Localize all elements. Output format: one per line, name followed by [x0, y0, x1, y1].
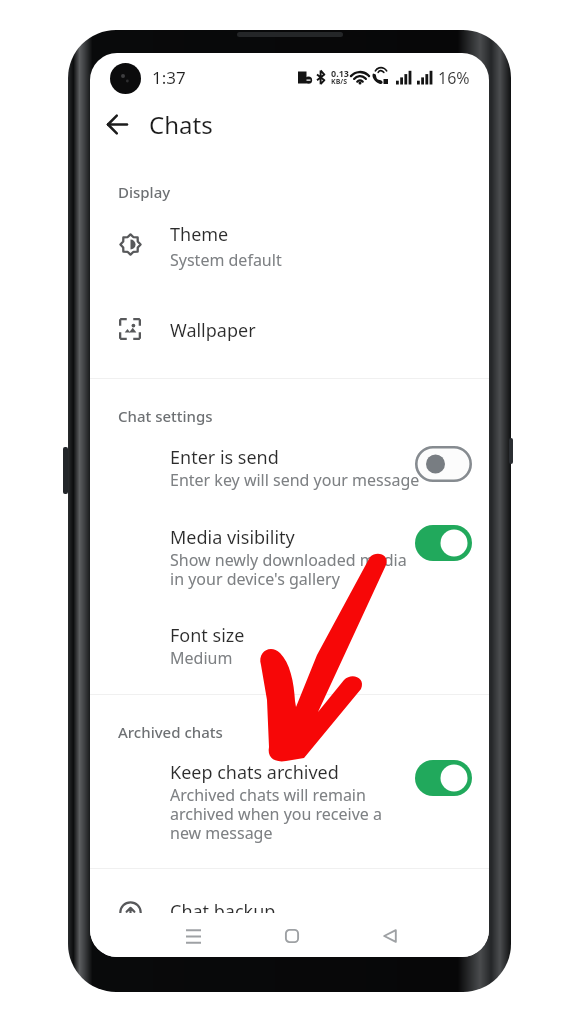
staticText: Enter key will send your message: [170, 469, 420, 491]
staticText: Medium: [170, 647, 233, 669]
button[interactable]: Switch on: [415, 525, 472, 561]
staticText: in your device's gallery: [170, 568, 340, 590]
staticText: Archived chats will remain: [170, 784, 366, 806]
button[interactable]: Theme: [170, 222, 229, 247]
staticText: Show newly downloaded media: [170, 549, 407, 571]
staticText: Chat settings: [118, 406, 213, 426]
button[interactable]: Keep chats archived: [170, 760, 339, 785]
button[interactable]: Chat backup: [170, 899, 276, 924]
button[interactable]: Switch off: [415, 446, 472, 482]
staticText: new message: [170, 822, 273, 844]
staticText: 16%: [438, 67, 470, 89]
staticText: Chat backup: [170, 899, 276, 924]
staticText: Theme: [170, 222, 229, 247]
staticText: Wallpaper: [170, 318, 256, 343]
staticText: Chats: [149, 108, 213, 141]
button[interactable]: Wallpaper: [170, 318, 256, 343]
staticText: 1:37: [152, 66, 186, 89]
staticText: Display: [118, 182, 171, 202]
button[interactable]: Enter is send: [170, 445, 279, 470]
button[interactable]: Back: [98, 105, 137, 144]
button[interactable]: Home: [272, 916, 312, 956]
button[interactable]: Font size: [170, 623, 245, 648]
staticText: System default: [170, 249, 282, 271]
staticText: Keep chats archived: [170, 760, 339, 785]
staticText: 0.13: [331, 67, 349, 79]
staticText: Font size: [170, 623, 245, 648]
staticText: Enter is send: [170, 445, 279, 470]
staticText: Media visibility: [170, 525, 295, 550]
button[interactable]: Back: [370, 916, 410, 956]
button[interactable]: Switch on: [415, 760, 472, 796]
staticText: Archived chats: [118, 722, 223, 742]
staticText: KB/S: [331, 77, 348, 87]
button[interactable]: Media visibility: [170, 525, 295, 550]
button[interactable]: Recent apps: [173, 916, 213, 956]
staticText: archived when you receive a: [170, 803, 382, 825]
